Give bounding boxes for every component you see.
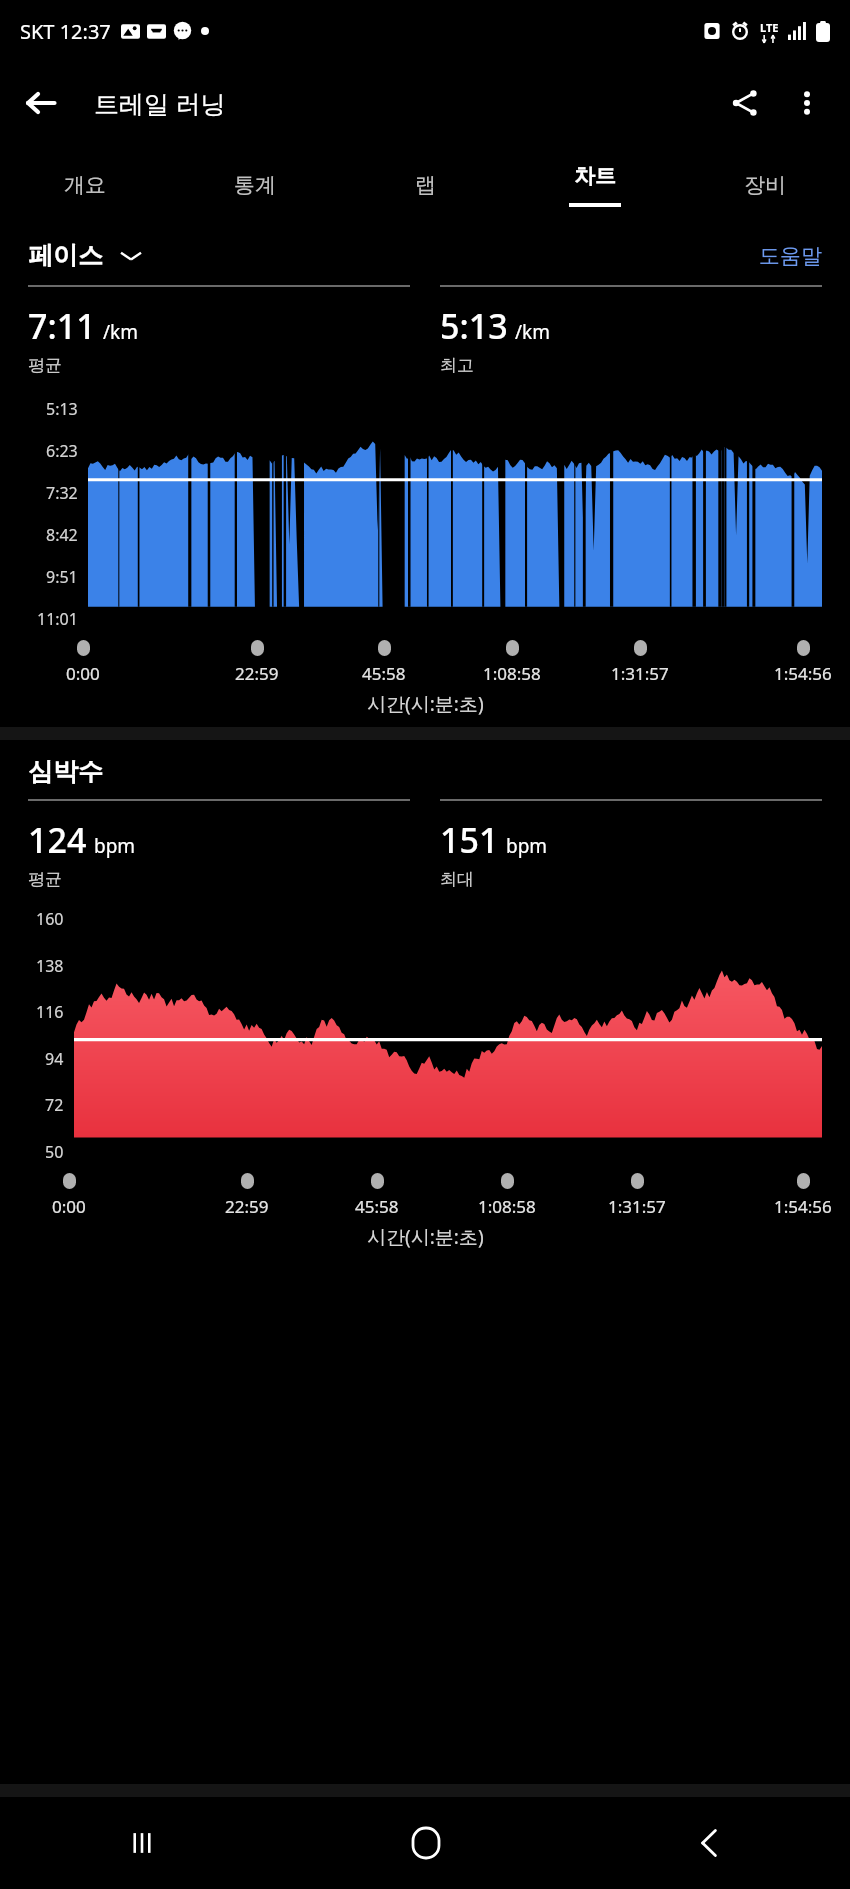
staticText: 최대 [440,869,474,890]
staticText: 72 [45,1094,64,1116]
button[interactable]: 장비 [680,144,850,226]
staticText: 시간(시:분:초) [367,691,484,717]
staticText: 심박수 [28,756,103,787]
staticText: 0:00 [66,662,100,685]
staticText: 개요 [64,172,106,198]
staticText: 9:51 [46,566,78,588]
staticText: 124 [28,817,87,863]
button[interactable]: More options [776,72,838,134]
button[interactable]: 개요 [0,144,170,226]
staticText: 1:31:57 [611,662,669,685]
staticText: 6:23 [46,440,78,462]
staticText: bpm [94,833,136,859]
staticText: /km [515,319,550,345]
staticText: 151 [440,817,499,863]
staticText: 22:59 [225,1195,269,1218]
staticText: LTE [760,20,779,35]
button[interactable]: Home [284,1797,567,1889]
staticText: 160 [36,908,64,930]
button[interactable]: Recents [0,1797,284,1889]
staticText: 7:11 [28,303,96,349]
staticText: 트레일 러닝 [94,86,226,120]
staticText: 페이스 [28,240,103,271]
staticText: 5:13 [440,303,508,349]
staticText: /km [103,319,138,345]
staticText: 45:58 [355,1195,399,1218]
staticText: 통계 [234,172,276,198]
staticText: 도움말 [759,243,822,269]
staticText: 1:31:57 [608,1195,666,1218]
staticText: 8:42 [46,524,78,546]
button[interactable]: 도움말 [759,243,822,269]
staticText: 45:58 [362,662,406,685]
staticText: 1:08:58 [478,1195,536,1218]
button[interactable]: 통계 [170,144,340,226]
button[interactable]: 차트 [510,144,680,226]
staticText: 116 [36,1001,64,1023]
staticText: 22:59 [235,662,279,685]
button[interactable]: 랩 [340,144,510,226]
staticText: 평균 [28,869,62,890]
staticText: 랩 [415,172,436,198]
staticText: 1:54:56 [774,1195,832,1218]
button[interactable]: Back [567,1797,850,1889]
button[interactable]: Share [714,72,776,134]
staticText: bpm [506,833,548,859]
button[interactable]: 페이스 [28,240,141,271]
staticText: 50 [45,1141,64,1163]
staticText: 1:08:58 [483,662,541,685]
staticText: 시간(시:분:초) [367,1224,484,1250]
staticText: 평균 [28,355,62,376]
staticText: 11:01 [37,608,78,630]
staticText: 5:13 [46,398,78,420]
staticText: 94 [45,1048,64,1070]
staticText: 0:00 [52,1195,86,1218]
staticText: 1:54:56 [774,662,832,685]
staticText: 최고 [440,355,474,376]
button[interactable]: Back [10,72,72,134]
staticText: 7:32 [46,482,78,504]
staticText: 장비 [744,172,786,198]
staticText: SKT 12:37 [20,18,111,45]
staticText: 차트 [574,163,616,189]
staticText: 138 [36,955,64,977]
